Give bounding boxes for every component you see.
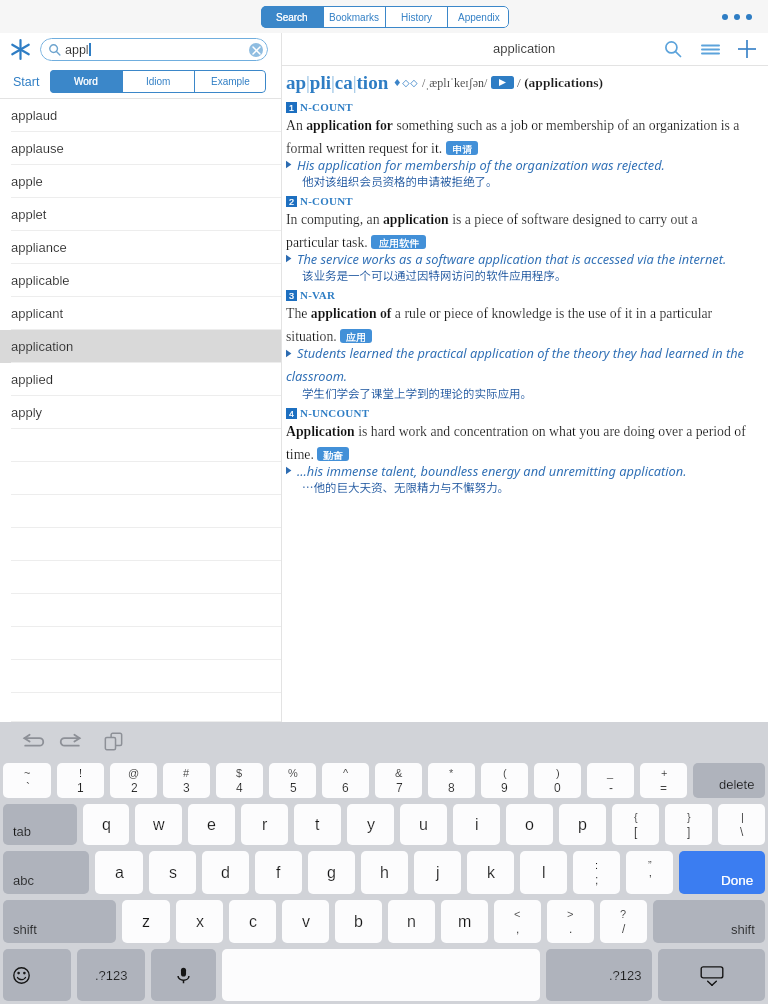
- button[interactable]: .?123: [546, 949, 652, 1001]
- button[interactable]: ~: [3, 763, 51, 798]
- button[interactable]: Dictation: [151, 949, 216, 1001]
- button[interactable]: }: [665, 804, 712, 845]
- staticText: ’: [649, 873, 652, 886]
- button[interactable]: applause: [0, 132, 281, 165]
- button[interactable]: appl: [40, 38, 268, 61]
- button[interactable]: x: [176, 900, 223, 943]
- button[interactable]: m: [441, 900, 488, 943]
- staticText: 3: [289, 291, 295, 301]
- button[interactable]: apply: [0, 396, 281, 429]
- button[interactable]: e: [188, 804, 235, 845]
- button[interactable]: shift: [653, 900, 765, 943]
- button[interactable]: applet: [0, 198, 281, 231]
- button[interactable]: :: [573, 851, 620, 894]
- button[interactable]: i: [453, 804, 500, 845]
- button[interactable]: @: [110, 763, 157, 798]
- button[interactable]: a: [95, 851, 143, 894]
- button[interactable]: Bookmarks: [324, 6, 385, 28]
- button[interactable]: Done: [679, 851, 765, 894]
- staticText: Appendix: [458, 12, 500, 23]
- button[interactable]: t: [294, 804, 341, 845]
- button[interactable]: #: [163, 763, 210, 798]
- button[interactable]: Example: [195, 70, 266, 93]
- button[interactable]: v: [282, 900, 329, 943]
- button[interactable]: Word: [50, 70, 122, 93]
- button[interactable]: %: [269, 763, 316, 798]
- button[interactable]: Favourites: [0, 33, 40, 65]
- button[interactable]: <: [494, 900, 541, 943]
- button[interactable]: q: [83, 804, 129, 845]
- button[interactable]: More options: [718, 10, 756, 24]
- button[interactable]: (: [481, 763, 528, 798]
- button[interactable]: {: [612, 804, 659, 845]
- button[interactable]: c: [229, 900, 276, 943]
- button[interactable]: Paste: [98, 726, 128, 756]
- button[interactable]: u: [400, 804, 447, 845]
- button[interactable]: $: [216, 763, 263, 798]
- button[interactable]: n: [388, 900, 435, 943]
- button[interactable]: tab: [3, 804, 77, 845]
- button[interactable]: b: [335, 900, 382, 943]
- button[interactable]: l: [520, 851, 567, 894]
- button[interactable]: Menu: [695, 34, 725, 64]
- button[interactable]: Idiom: [123, 70, 194, 93]
- staticText: ;: [595, 873, 599, 886]
- button[interactable]: ?: [600, 900, 647, 943]
- staticText: x: [196, 913, 204, 931]
- button[interactable]: r: [241, 804, 288, 845]
- button[interactable]: z: [122, 900, 170, 943]
- button[interactable]: >: [547, 900, 594, 943]
- staticText: ▶The service works as a software applica…: [286, 250, 727, 267]
- staticText: ▶Students learned the practical applicat…: [286, 344, 746, 385]
- button[interactable]: +: [640, 763, 687, 798]
- button[interactable]: Emoji: [3, 949, 71, 1001]
- button[interactable]: Play pronunciation: [491, 76, 514, 89]
- button[interactable]: p: [559, 804, 606, 845]
- button[interactable]: d: [202, 851, 249, 894]
- button[interactable]: applied: [0, 363, 281, 396]
- button[interactable]: .?123: [77, 949, 145, 1001]
- button[interactable]: o: [506, 804, 553, 845]
- button[interactable]: History: [386, 6, 447, 28]
- staticText: ^: [343, 767, 349, 779]
- staticText: e: [207, 816, 216, 834]
- button[interactable]: applaud: [0, 99, 281, 132]
- button[interactable]: y: [347, 804, 394, 845]
- button[interactable]: Search: [658, 34, 688, 64]
- button[interactable]: Undo: [16, 726, 46, 756]
- staticText: Idiom: [146, 76, 171, 87]
- button[interactable]: Search: [261, 6, 323, 28]
- button[interactable]: ): [534, 763, 581, 798]
- button[interactable]: &: [375, 763, 422, 798]
- button[interactable]: Clear text: [249, 43, 263, 57]
- button[interactable]: j: [414, 851, 461, 894]
- button[interactable]: k: [467, 851, 514, 894]
- button[interactable]: Hide keyboard: [658, 949, 765, 1001]
- button[interactable]: Redo: [57, 726, 87, 756]
- button[interactable]: g: [308, 851, 355, 894]
- button[interactable]: apple: [0, 165, 281, 198]
- staticText: +: [661, 767, 668, 779]
- button[interactable]: !: [57, 763, 104, 798]
- button[interactable]: applicable: [0, 264, 281, 297]
- button[interactable]: shift: [3, 900, 116, 943]
- button[interactable]: application: [0, 330, 281, 363]
- button[interactable]: ”: [626, 851, 673, 894]
- button[interactable]: applicant: [0, 297, 281, 330]
- button[interactable]: h: [361, 851, 408, 894]
- button[interactable]: w: [135, 804, 182, 845]
- button[interactable]: f: [255, 851, 302, 894]
- button[interactable]: _: [587, 763, 634, 798]
- button[interactable]: Appendix: [448, 6, 509, 28]
- button[interactable]: ^: [322, 763, 369, 798]
- button[interactable]: |: [718, 804, 765, 845]
- button[interactable]: *: [428, 763, 475, 798]
- button[interactable]: Add: [732, 34, 762, 64]
- button[interactable]: s: [149, 851, 196, 894]
- staticText: N-COUNT: [300, 195, 353, 207]
- button[interactable]: appliance: [0, 231, 281, 264]
- button[interactable]: abc: [3, 851, 89, 894]
- button[interactable]: delete: [693, 763, 765, 798]
- staticText: History: [401, 12, 433, 23]
